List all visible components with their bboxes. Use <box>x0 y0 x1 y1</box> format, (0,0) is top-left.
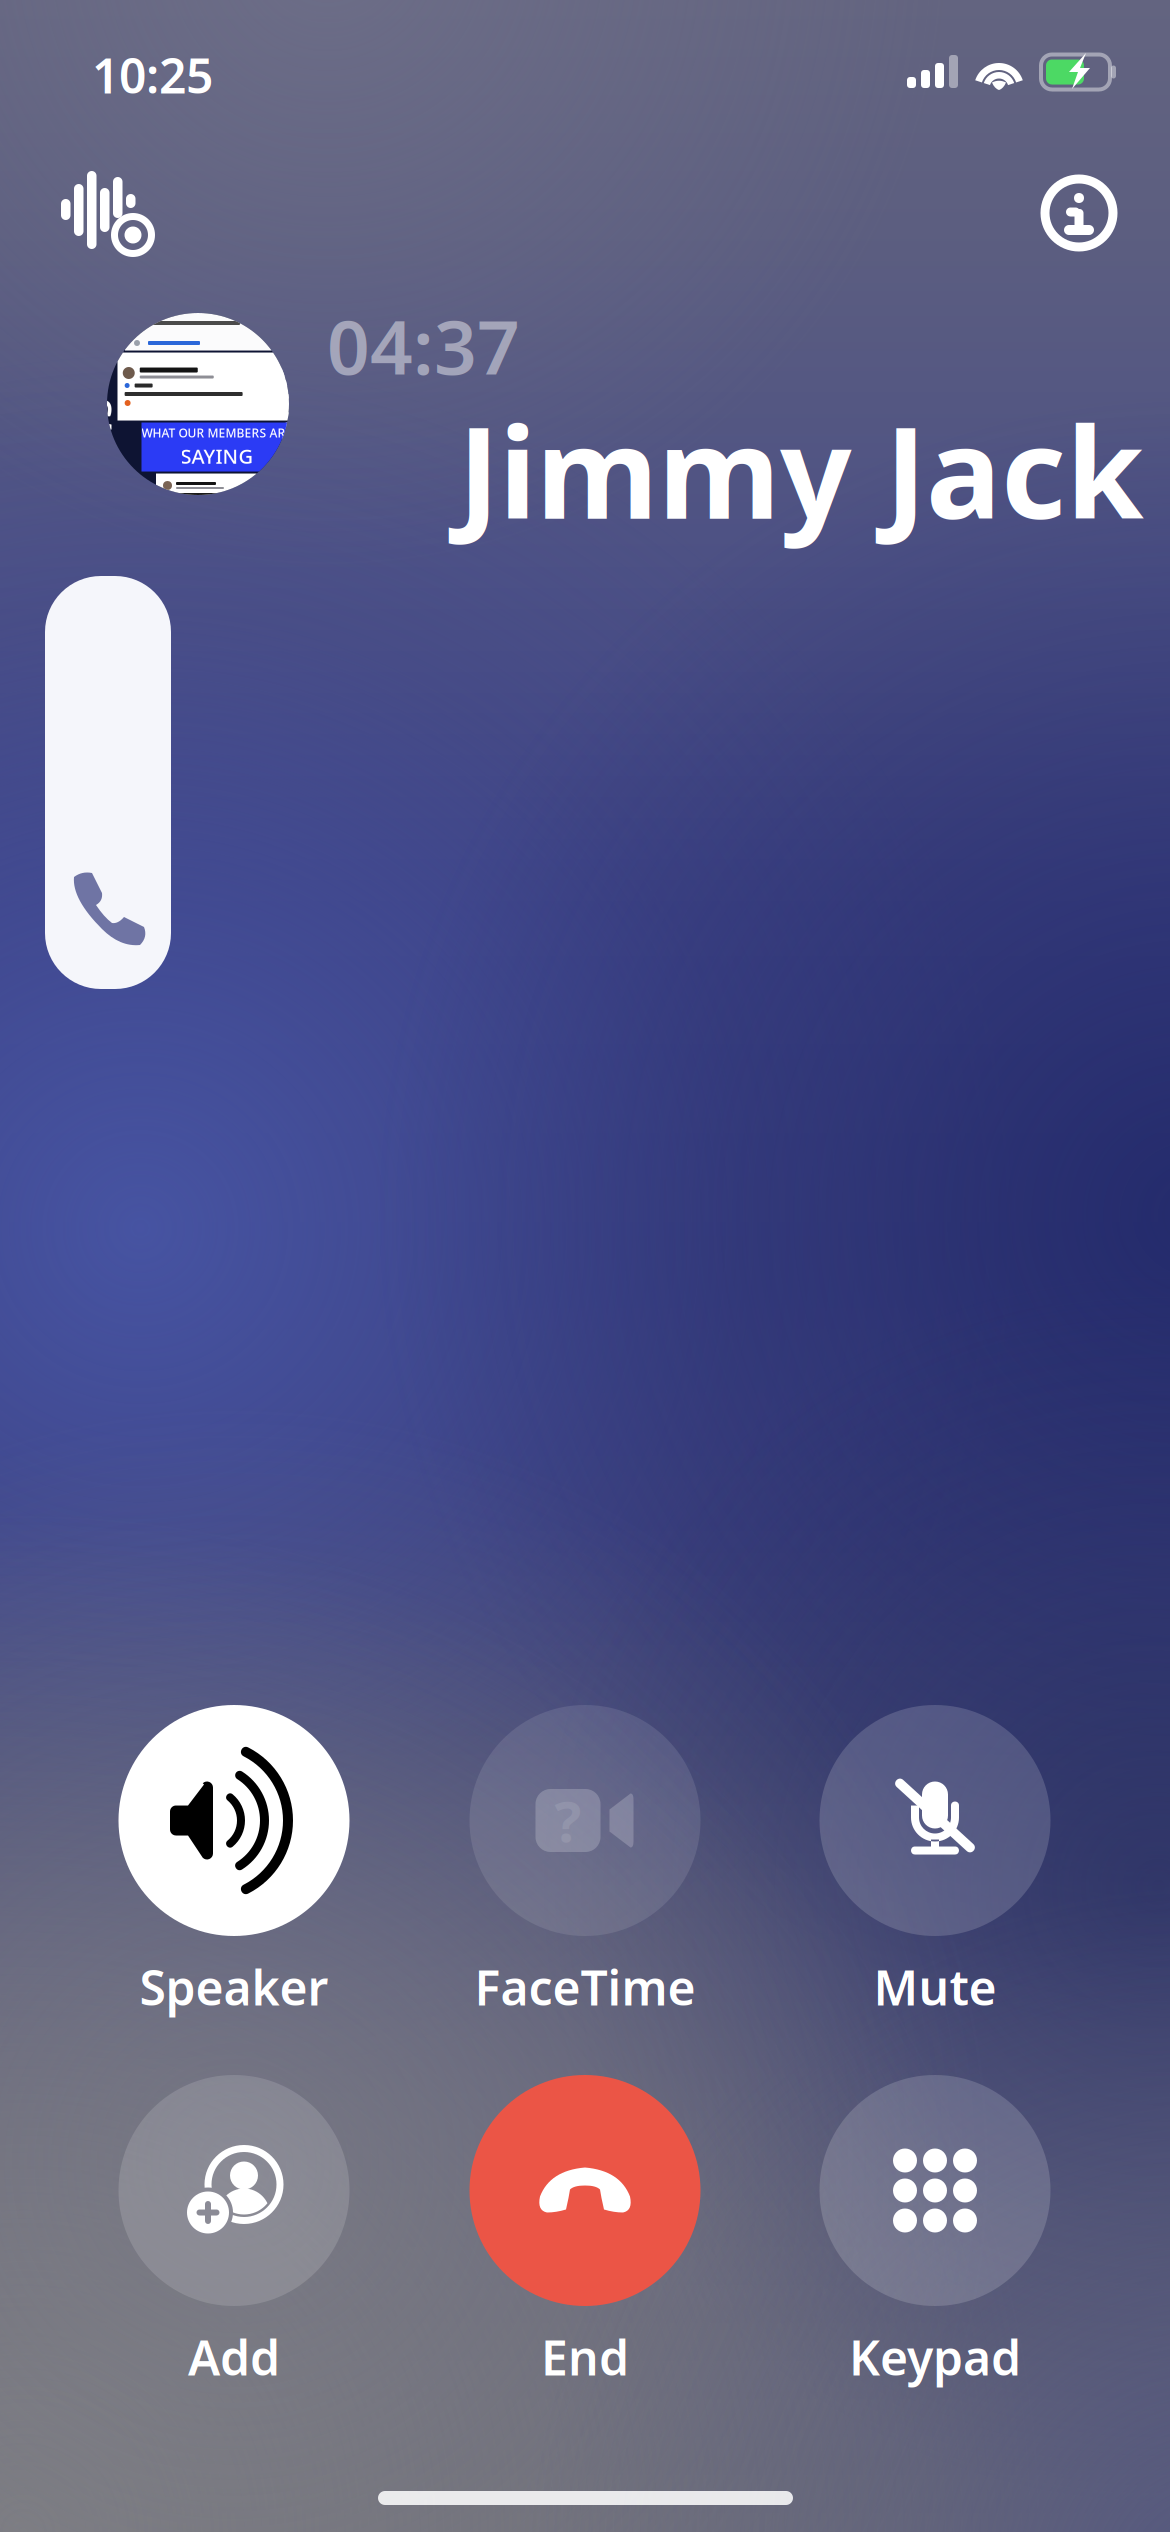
staticText: Jimmy Jack <box>458 387 1144 553</box>
staticText: ? <box>554 1783 581 1858</box>
button[interactable]: End call <box>435 2075 735 2375</box>
staticText: Keypad <box>849 2325 1021 2389</box>
staticText: 04:37 <box>327 296 520 395</box>
button[interactable]: Add call <box>84 2075 384 2375</box>
staticText: FaceTime <box>474 1955 695 2019</box>
button[interactable]: Audio routing <box>48 156 158 264</box>
staticText: End <box>541 2325 629 2389</box>
button[interactable]: Keypad <box>785 2075 1085 2375</box>
staticText: SAYING <box>180 443 253 469</box>
staticText: Speaker <box>139 1955 328 2019</box>
button[interactable]: FaceTime <box>435 1705 735 2005</box>
staticText: 10:25 <box>92 43 213 107</box>
button[interactable]: Resume call <box>45 576 171 989</box>
button[interactable]: Mute <box>785 1705 1085 2005</box>
staticText: VIEWS <box>45 429 151 475</box>
button[interactable]: Call info <box>1040 174 1118 252</box>
staticText: REVIEW <box>229 355 357 401</box>
staticText: Mute <box>873 1955 996 2019</box>
staticText: WHAT OUR MEMBERS ARE <box>141 425 292 441</box>
staticText: Add <box>188 2325 280 2389</box>
button[interactable]: Speaker <box>84 1705 384 2005</box>
